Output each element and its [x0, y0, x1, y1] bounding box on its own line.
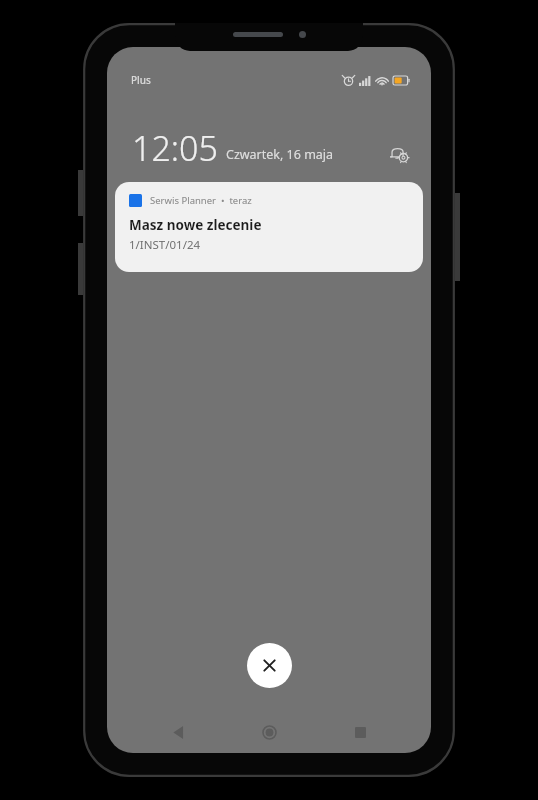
- staticText: Plus: [131, 73, 151, 87]
- button[interactable]: Close: [247, 643, 292, 688]
- staticText: 12:05: [132, 125, 218, 171]
- staticText: Serwis Planner • teraz: [150, 194, 252, 207]
- button[interactable]: Serwis Planner • teraz: [115, 182, 423, 272]
- staticText: 1/INST/01/24: [129, 237, 201, 253]
- button[interactable]: Recent apps: [340, 712, 380, 752]
- staticText: Czwartek, 16 maja: [226, 146, 334, 163]
- button[interactable]: Back: [158, 712, 198, 752]
- button[interactable]: Notification settings: [383, 138, 413, 168]
- button[interactable]: Home: [249, 712, 289, 752]
- staticText: Masz nowe zlecenie: [129, 216, 262, 234]
